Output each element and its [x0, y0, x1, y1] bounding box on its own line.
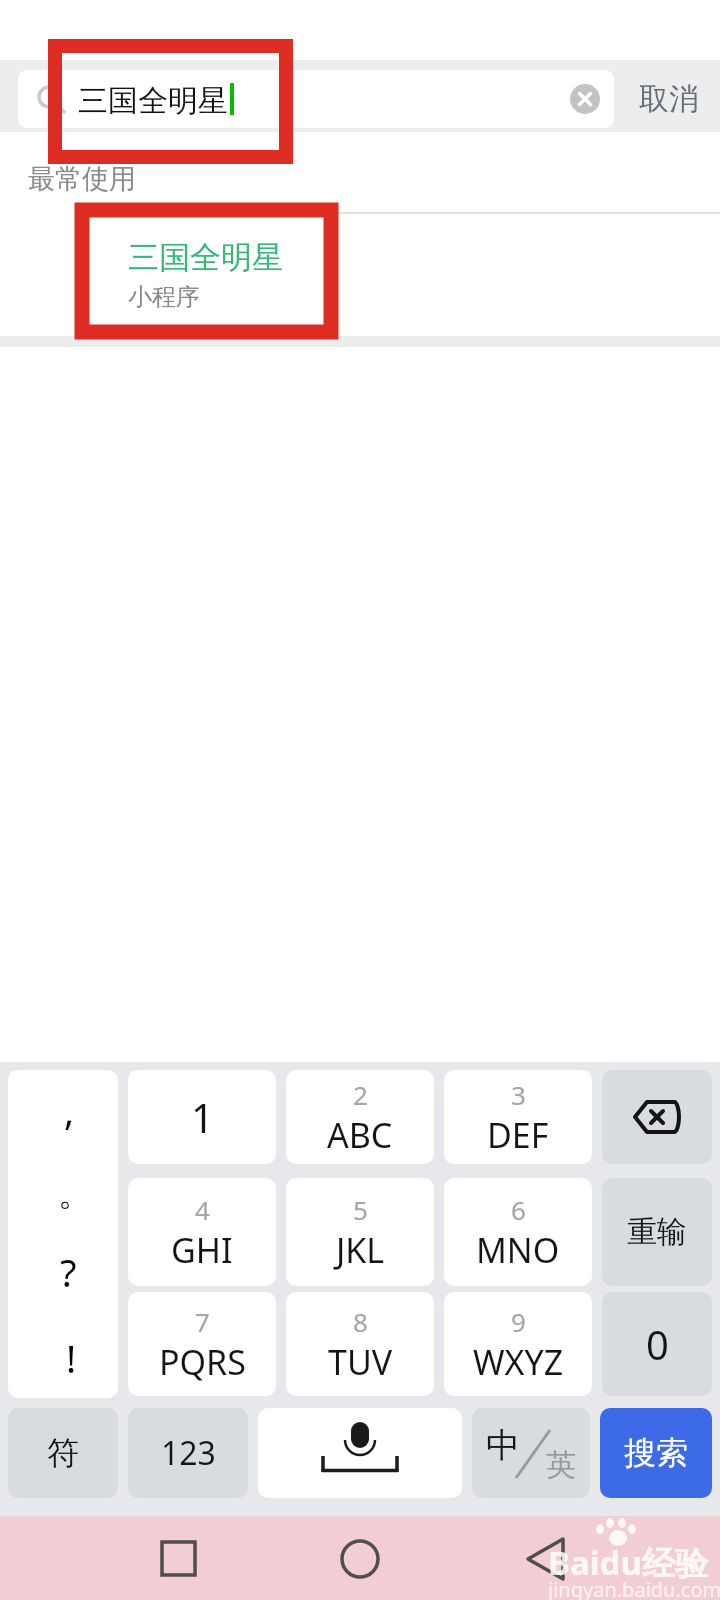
- staticText: 8: [353, 1304, 368, 1339]
- staticText: 英: [546, 1446, 576, 1484]
- staticText: 0: [646, 1317, 669, 1371]
- staticText: 符: [47, 1433, 79, 1473]
- staticText: 中: [486, 1424, 520, 1467]
- staticText: ,: [64, 1084, 75, 1136]
- button[interactable]: 三国全明星: [0, 214, 720, 336]
- staticText: GHI: [171, 1227, 233, 1273]
- staticText: 9: [511, 1304, 526, 1339]
- button[interactable]: 5: [286, 1178, 434, 1286]
- staticText: ?: [60, 1246, 77, 1298]
- staticText: 2: [353, 1077, 368, 1112]
- staticText: Baidu经验: [548, 1540, 708, 1585]
- button[interactable]: 重输: [602, 1178, 712, 1286]
- staticText: 最常使用: [28, 162, 136, 196]
- staticText: TUV: [328, 1339, 393, 1385]
- staticText: 取消: [639, 80, 699, 118]
- staticText: 3: [511, 1077, 526, 1112]
- button[interactable]: 中: [472, 1408, 590, 1498]
- button[interactable]: 取消: [624, 70, 714, 128]
- staticText: 7: [195, 1304, 210, 1339]
- button[interactable]: [570, 84, 600, 114]
- staticText: PQRS: [159, 1339, 246, 1385]
- staticText: 三国全明星: [78, 82, 228, 120]
- button[interactable]: 123: [128, 1408, 248, 1498]
- staticText: 。: [58, 1172, 92, 1215]
- staticText: 重输: [627, 1213, 687, 1251]
- button[interactable]: 2: [286, 1070, 434, 1164]
- button[interactable]: 三国全明星: [18, 70, 614, 128]
- staticText: 三国全明星: [128, 238, 283, 277]
- button[interactable]: 3: [444, 1070, 592, 1164]
- button[interactable]: 9: [444, 1292, 592, 1396]
- staticText: 123: [161, 1431, 216, 1475]
- staticText: jingyan.baidu.com: [548, 1576, 720, 1600]
- button[interactable]: [258, 1408, 462, 1498]
- button[interactable]: 1: [128, 1070, 276, 1164]
- staticText: 5: [353, 1192, 368, 1227]
- button[interactable]: 4: [128, 1178, 276, 1286]
- button[interactable]: 搜索: [600, 1408, 712, 1498]
- button[interactable]: 符: [8, 1408, 118, 1498]
- staticText: 6: [511, 1192, 526, 1227]
- staticText: 搜索: [624, 1433, 688, 1473]
- staticText: WXYZ: [473, 1339, 564, 1385]
- staticText: JKL: [336, 1227, 385, 1273]
- button[interactable]: 0: [602, 1292, 712, 1396]
- button[interactable]: 7: [128, 1292, 276, 1396]
- button[interactable]: ,: [8, 1070, 118, 1398]
- staticText: 4: [195, 1192, 210, 1227]
- staticText: 1: [191, 1090, 214, 1144]
- button[interactable]: 6: [444, 1178, 592, 1286]
- staticText: !: [66, 1332, 77, 1384]
- staticText: DEF: [487, 1112, 549, 1158]
- staticText: MNO: [476, 1227, 560, 1273]
- staticText: ABC: [327, 1112, 393, 1158]
- button[interactable]: 8: [286, 1292, 434, 1396]
- staticText: 小程序: [128, 282, 200, 312]
- button[interactable]: [602, 1070, 712, 1164]
